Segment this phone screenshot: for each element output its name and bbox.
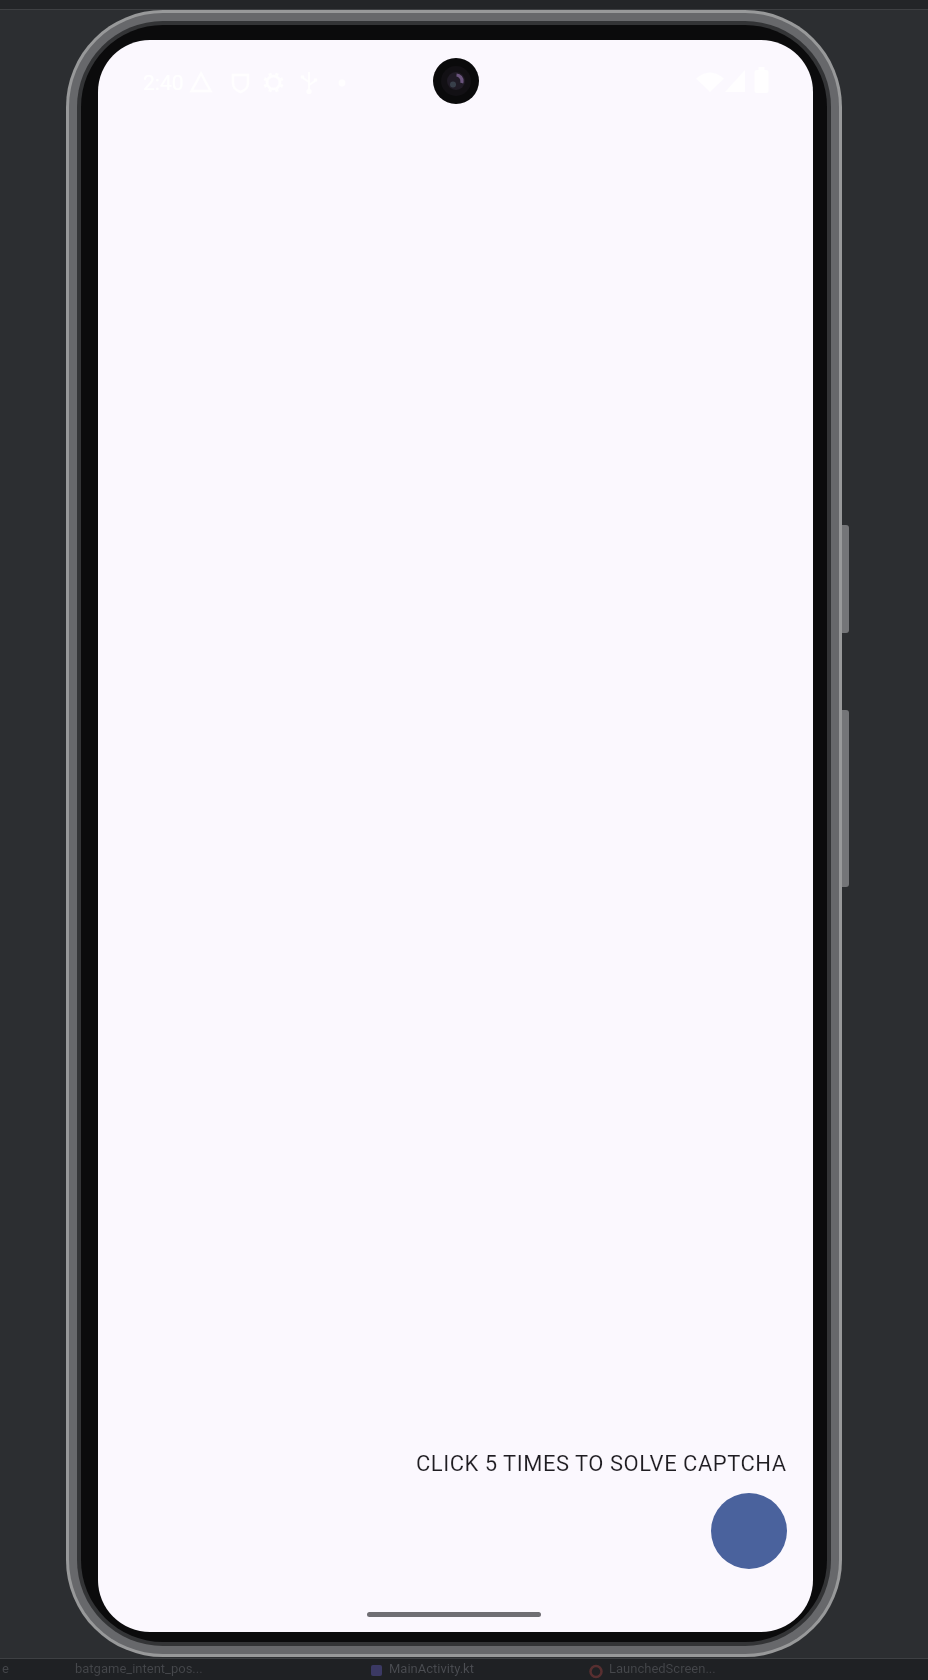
staticText: LaunchedScreen... — [609, 1661, 716, 1676]
button[interactable] — [711, 1493, 787, 1569]
staticText: MainActivity.kt — [389, 1661, 474, 1676]
staticText: batgame_intent_pos... — [75, 1661, 203, 1676]
button[interactable]: CLICK 5 TIMES TO SOLVE CAPTCHA — [416, 1451, 787, 1477]
staticText: e — [2, 1661, 9, 1676]
